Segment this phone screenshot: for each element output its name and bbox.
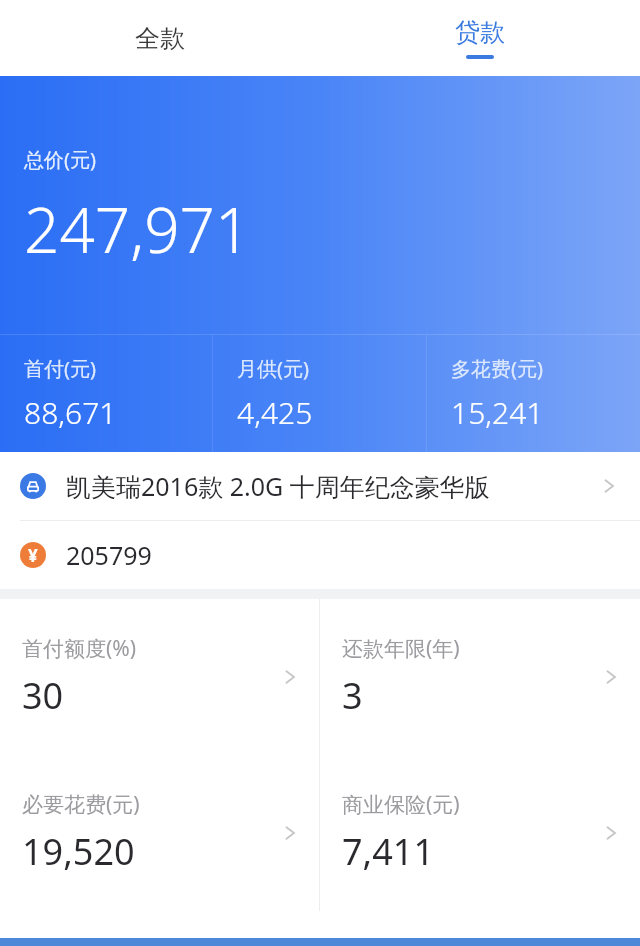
staticText: 19,520 — [22, 827, 135, 876]
staticText: 88,671 — [24, 392, 117, 433]
button[interactable]: 必要花费(元) — [0, 755, 319, 911]
staticText: 商业保险(元) — [342, 790, 460, 819]
button[interactable]: 首付(元) — [0, 335, 212, 452]
staticText: 月供(元) — [237, 355, 309, 382]
staticText: 贷款 — [455, 17, 505, 48]
button[interactable]: 月供(元) — [213, 335, 426, 452]
staticText: 总价(元) — [24, 146, 96, 173]
button[interactable]: 首付额度(%) — [0, 599, 319, 755]
button[interactable]: 凯美瑞2016款 2.0G 十周年纪念豪华版 — [0, 452, 640, 520]
button[interactable]: 多花费(元) — [427, 335, 640, 452]
button[interactable]: 还款年限(年) — [320, 599, 640, 755]
staticText: 15,241 — [451, 392, 544, 433]
staticText: ¥ — [28, 544, 38, 567]
staticText: 必要花费(元) — [22, 790, 140, 819]
other: Open — [598, 475, 620, 497]
staticText: 首付额度(%) — [22, 634, 137, 663]
other: Open — [279, 822, 301, 844]
staticText: 还款年限(年) — [342, 634, 460, 663]
button[interactable]: ¥ — [0, 521, 640, 589]
staticText: 凯美瑞2016款 2.0G 十周年纪念豪华版 — [66, 469, 490, 503]
other: Open — [600, 666, 622, 688]
other: Open — [279, 666, 301, 688]
button[interactable]: 贷款 — [320, 0, 640, 76]
staticText: 3 — [342, 671, 363, 720]
button[interactable]: 全款 — [0, 0, 320, 76]
staticText: 全款 — [135, 23, 185, 54]
staticText: 多花费(元) — [451, 355, 543, 382]
staticText: 247,971 — [24, 187, 251, 271]
button[interactable]: 商业保险(元) — [320, 755, 640, 911]
staticText: 205799 — [66, 538, 152, 572]
staticText: 4,425 — [237, 392, 313, 433]
other: Open — [600, 822, 622, 844]
staticText: 首付(元) — [24, 355, 96, 382]
staticText: 30 — [22, 671, 64, 720]
staticText: 7,411 — [342, 827, 435, 876]
